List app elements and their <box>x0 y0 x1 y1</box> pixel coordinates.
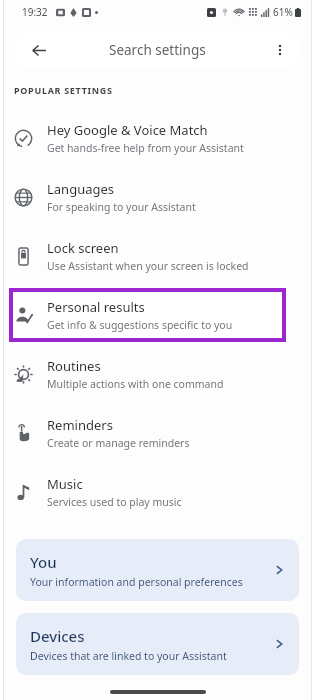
staticText: Reminders <box>47 416 113 434</box>
staticText: Music <box>47 475 83 493</box>
staticText: Create or manage reminders <box>47 436 190 450</box>
staticText: Hey Google & Voice Match <box>47 121 208 139</box>
button[interactable]: You <box>16 539 299 601</box>
staticText: Personal results <box>47 298 145 316</box>
staticText: Devices that are linked to your Assistan… <box>30 649 227 663</box>
button[interactable]: Back <box>24 36 52 64</box>
staticText: Lock screen <box>47 239 119 257</box>
button[interactable]: Devices <box>16 613 299 675</box>
button[interactable]: Back <box>14 31 301 69</box>
button[interactable]: Languages <box>0 169 315 228</box>
staticText: Your information and personal preference… <box>30 575 243 589</box>
button[interactable]: Routines <box>0 346 315 405</box>
staticText: Languages <box>47 180 115 198</box>
staticText: Search settings <box>109 41 206 59</box>
staticText: Services used to play music <box>47 495 182 509</box>
button[interactable]: More options <box>267 37 293 63</box>
staticText: Devices <box>30 626 85 646</box>
button[interactable]: Reminders <box>0 405 315 464</box>
staticText: POPULAR SETTINGS <box>14 84 113 96</box>
staticText: You <box>30 552 57 572</box>
staticText: Get info & suggestions specific to you <box>47 318 233 332</box>
staticText: Use Assistant when your screen is locked <box>47 259 249 273</box>
staticText: For speaking to your Assistant <box>47 200 196 214</box>
button[interactable]: Hey Google & Voice Match <box>0 110 315 169</box>
staticText: 19:32 <box>22 5 48 19</box>
staticText: 61% <box>273 5 293 19</box>
button[interactable]: Lock screen <box>0 228 315 287</box>
button[interactable]: Music <box>0 464 315 523</box>
staticText: Get hands-free help from your Assistant <box>47 141 244 155</box>
staticText: Multiple actions with one command <box>47 377 224 391</box>
staticText: Routines <box>47 357 101 375</box>
